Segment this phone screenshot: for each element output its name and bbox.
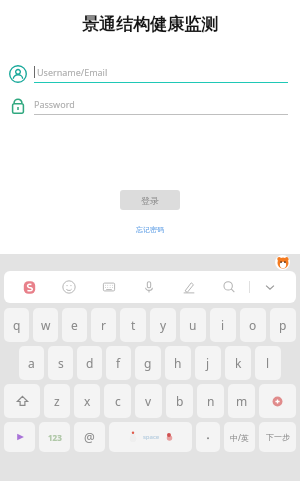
staticText: space bbox=[143, 433, 160, 441]
staticText: n bbox=[207, 393, 215, 409]
staticText: g bbox=[144, 355, 152, 371]
button[interactable]: Next bbox=[259, 422, 296, 452]
staticText: q bbox=[13, 317, 21, 333]
button[interactable]: Shift bbox=[4, 384, 40, 418]
staticText: i bbox=[221, 317, 225, 333]
staticText: z bbox=[54, 393, 60, 409]
button[interactable]: c bbox=[104, 384, 131, 418]
button[interactable]: h bbox=[165, 346, 191, 380]
button[interactable]: s bbox=[48, 346, 73, 380]
staticText: 忘记密码 bbox=[136, 225, 164, 234]
staticText: y bbox=[160, 317, 167, 333]
staticText: h bbox=[174, 355, 182, 371]
button[interactable]: Symbols bbox=[74, 422, 105, 452]
other: User bbox=[9, 65, 27, 83]
button[interactable]: Stickers bbox=[4, 422, 35, 452]
staticText: e bbox=[71, 317, 78, 333]
button[interactable]: Emoji bbox=[49, 271, 89, 303]
other: Password bbox=[9, 97, 27, 115]
button[interactable]: Numbers bbox=[39, 422, 70, 452]
staticText: d bbox=[86, 355, 94, 371]
staticText: p bbox=[279, 317, 287, 333]
staticText: u bbox=[189, 317, 197, 333]
button[interactable]: u bbox=[180, 308, 206, 342]
button[interactable]: 登录 bbox=[120, 190, 180, 210]
button[interactable]: a bbox=[19, 346, 44, 380]
button[interactable]: Search bbox=[209, 271, 249, 303]
staticText: @ bbox=[84, 429, 95, 445]
staticText: j bbox=[206, 355, 210, 371]
button[interactable]: v bbox=[135, 384, 162, 418]
button[interactable]: Hide keyboard bbox=[250, 271, 290, 303]
button[interactable]: g bbox=[135, 346, 161, 380]
staticText: k bbox=[235, 355, 242, 371]
button[interactable]: p bbox=[270, 308, 296, 342]
button[interactable]: x bbox=[74, 384, 100, 418]
button[interactable]: z bbox=[44, 384, 70, 418]
button[interactable]: b bbox=[166, 384, 193, 418]
staticText: 景通结构健康监测 bbox=[82, 14, 218, 35]
staticText: Username/Email bbox=[37, 66, 108, 78]
staticText: t bbox=[131, 317, 136, 333]
button[interactable]: Password bbox=[8, 94, 288, 118]
button[interactable]: Voice input bbox=[129, 271, 169, 303]
staticText: 123 bbox=[48, 432, 62, 443]
button[interactable]: Keyboard layout bbox=[89, 271, 129, 303]
button[interactable]: Handwriting bbox=[169, 271, 209, 303]
button[interactable]: Period bbox=[196, 422, 220, 452]
button[interactable]: i bbox=[210, 308, 236, 342]
staticText: f bbox=[116, 355, 121, 371]
button[interactable]: Backspace bbox=[259, 384, 296, 418]
button[interactable]: t bbox=[120, 308, 146, 342]
button[interactable]: o bbox=[240, 308, 266, 342]
staticText: Password bbox=[34, 98, 75, 110]
button[interactable]: f bbox=[106, 346, 131, 380]
button[interactable]: User bbox=[8, 62, 288, 86]
staticText: l bbox=[266, 355, 270, 371]
button[interactable]: 忘记密码 bbox=[130, 223, 170, 236]
button[interactable]: m bbox=[228, 384, 255, 418]
staticText: r bbox=[101, 317, 106, 333]
button[interactable]: q bbox=[4, 308, 29, 342]
button[interactable]: w bbox=[33, 308, 58, 342]
button[interactable]: d bbox=[77, 346, 102, 380]
staticText: c bbox=[115, 393, 121, 409]
staticText: m bbox=[236, 393, 248, 409]
button[interactable]: r bbox=[91, 308, 116, 342]
staticText: a bbox=[28, 355, 35, 371]
button[interactable]: l bbox=[255, 346, 281, 380]
staticText: b bbox=[176, 393, 184, 409]
staticText: 下一步 bbox=[266, 432, 290, 442]
staticText: s bbox=[58, 355, 64, 371]
staticText: w bbox=[41, 317, 51, 333]
staticText: o bbox=[249, 317, 257, 333]
button[interactable]: Space bbox=[109, 422, 192, 452]
button[interactable]: e bbox=[62, 308, 87, 342]
staticText: x bbox=[84, 393, 91, 409]
staticText: 登录 bbox=[141, 195, 159, 206]
button[interactable]: Sogou bbox=[10, 271, 49, 303]
button[interactable]: k bbox=[225, 346, 251, 380]
staticText: 中/英 bbox=[230, 432, 249, 443]
button[interactable]: n bbox=[197, 384, 224, 418]
button[interactable]: Mascot bbox=[275, 255, 290, 270]
staticText: v bbox=[145, 393, 152, 409]
button[interactable]: Chinese English toggle bbox=[224, 422, 255, 452]
button[interactable]: j bbox=[195, 346, 221, 380]
button[interactable]: y bbox=[150, 308, 176, 342]
